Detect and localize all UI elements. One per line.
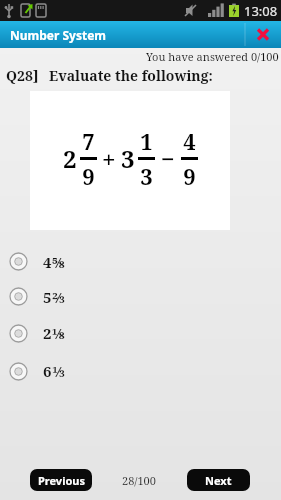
- staticText: ⅛: [52, 323, 65, 343]
- staticText: 2: [43, 323, 52, 343]
- staticText: 13:08: [244, 2, 278, 20]
- button[interactable]: 6: [0, 352, 281, 390]
- staticText: ⅓: [52, 361, 65, 381]
- staticText: Next: [205, 473, 232, 488]
- staticText: 28/100: [122, 473, 156, 488]
- staticText: You have answered 0/100: [146, 49, 279, 64]
- staticText: 7: [82, 126, 95, 156]
- staticText: Number System: [10, 27, 107, 43]
- button[interactable]: Next: [187, 469, 250, 491]
- staticText: Previous: [38, 473, 85, 488]
- button[interactable]: 4: [0, 244, 281, 279]
- staticText: 9: [82, 161, 95, 191]
- button[interactable]: 2: [0, 314, 281, 352]
- staticText: 1: [140, 126, 153, 156]
- staticText: 6: [43, 361, 52, 381]
- staticText: Q28]: [6, 66, 39, 85]
- staticText: 4: [183, 126, 196, 156]
- staticText: Evaluate the following:: [49, 66, 213, 85]
- staticText: 4: [43, 252, 52, 272]
- button[interactable]: 5: [0, 279, 281, 314]
- staticText: 2: [63, 142, 77, 175]
- staticText: 3: [121, 142, 135, 175]
- staticText: ⅔: [52, 287, 65, 307]
- button[interactable]: Close: [245, 21, 281, 48]
- staticText: ⅝: [52, 252, 65, 272]
- staticText: 5: [43, 287, 52, 307]
- staticText: −: [161, 142, 175, 175]
- button[interactable]: Previous: [30, 469, 92, 491]
- staticText: 3: [140, 161, 153, 191]
- staticText: 9: [183, 161, 196, 191]
- staticText: +: [102, 142, 116, 175]
